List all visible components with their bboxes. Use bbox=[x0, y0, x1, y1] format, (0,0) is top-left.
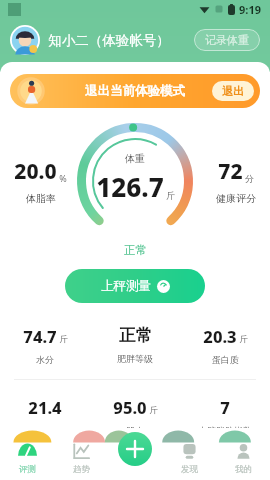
button[interactable]: 记录体重 bbox=[194, 29, 260, 51]
staticText: 126.7 bbox=[96, 169, 164, 204]
button[interactable]: 评测 bbox=[0, 440, 54, 475]
button[interactable]: 退出 bbox=[212, 81, 254, 101]
staticText: 95.0 bbox=[113, 396, 147, 418]
staticText: 20.3 bbox=[203, 325, 237, 347]
staticText: 7 bbox=[220, 396, 230, 418]
staticText: 斤 bbox=[149, 405, 158, 416]
staticText: 9:19 bbox=[239, 2, 261, 17]
staticText: 退出当前体验模式 bbox=[85, 83, 185, 99]
staticText: 上秤测量 bbox=[101, 278, 151, 294]
staticText: 健康评分 bbox=[216, 192, 256, 205]
staticText: 肌肉 bbox=[126, 425, 144, 428]
button[interactable]: 退出当前体验模式 bbox=[10, 74, 260, 108]
staticText: 发现 bbox=[181, 464, 198, 475]
staticText: 退出 bbox=[222, 84, 244, 98]
staticText: 正常 bbox=[119, 325, 152, 346]
staticText: 正常 bbox=[124, 243, 147, 257]
staticText: 体重 bbox=[125, 152, 145, 165]
button[interactable]: 上秤测量 bbox=[65, 269, 205, 303]
button[interactable]: Add bbox=[118, 432, 152, 466]
staticText: 水分 bbox=[36, 354, 54, 365]
staticText: 内脏脂肪指数 bbox=[198, 425, 252, 428]
staticText: 分 bbox=[245, 173, 254, 184]
staticText: 74.7 bbox=[23, 325, 57, 347]
staticText: 21.4 bbox=[28, 396, 62, 418]
staticText: 趋势 bbox=[73, 464, 90, 475]
staticText: 记录体重 bbox=[205, 33, 249, 47]
staticText: 我的 bbox=[235, 464, 252, 475]
staticText: 蛋白质 bbox=[212, 354, 239, 365]
button[interactable] bbox=[10, 25, 40, 55]
staticText: 斤 bbox=[166, 190, 175, 201]
staticText: 斤 bbox=[239, 334, 248, 345]
button[interactable]: 我的 bbox=[216, 440, 270, 475]
staticText: 评测 bbox=[19, 464, 36, 475]
staticText: 体脂率 bbox=[26, 192, 56, 205]
staticText: 72 bbox=[218, 157, 243, 186]
button[interactable]: 趋势 bbox=[54, 440, 108, 475]
button[interactable]: 发现 bbox=[162, 440, 216, 475]
staticText: % bbox=[59, 172, 67, 184]
staticText: 20.0 bbox=[14, 157, 57, 186]
staticText: 肥胖等级 bbox=[117, 353, 153, 364]
staticText: 斤 bbox=[59, 334, 68, 345]
staticText: 知小二（体验帐号） bbox=[48, 32, 170, 49]
